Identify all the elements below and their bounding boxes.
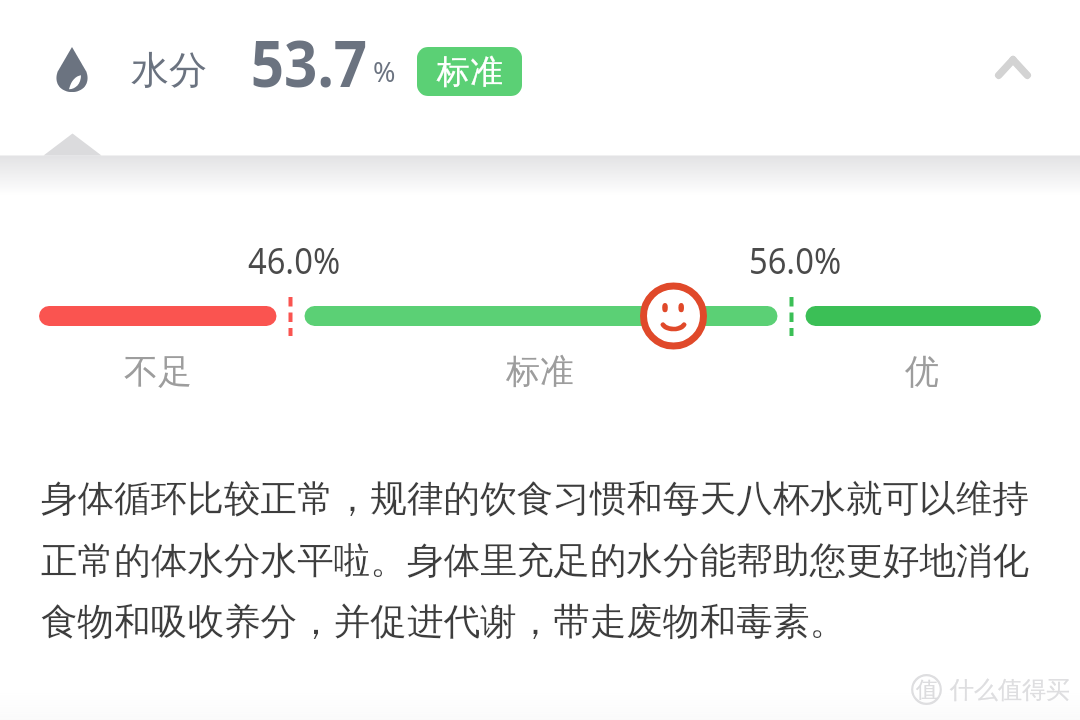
staticText: 优 [905,350,939,393]
staticText: 不足 [124,350,192,393]
staticText: 56.0% [749,236,841,285]
staticText: 46.0% [248,236,340,285]
button[interactable]: Collapse [968,22,1058,112]
staticText: 水分 [131,46,207,94]
staticText: 值 [916,676,938,704]
staticText: % [373,53,396,90]
button[interactable]: 标准 [417,47,522,96]
staticText: 53.7 [251,19,367,106]
staticText: 标准 [437,51,503,93]
staticText: 身体循环比较正常，规律的饮食习惯和每天八杯水就可以维持正常的体水分水平啦。身体里… [41,476,1041,644]
button[interactable]: 水分 [0,0,1080,134]
staticText: 标准 [506,350,574,393]
staticText: 什么值得买 [950,675,1070,705]
